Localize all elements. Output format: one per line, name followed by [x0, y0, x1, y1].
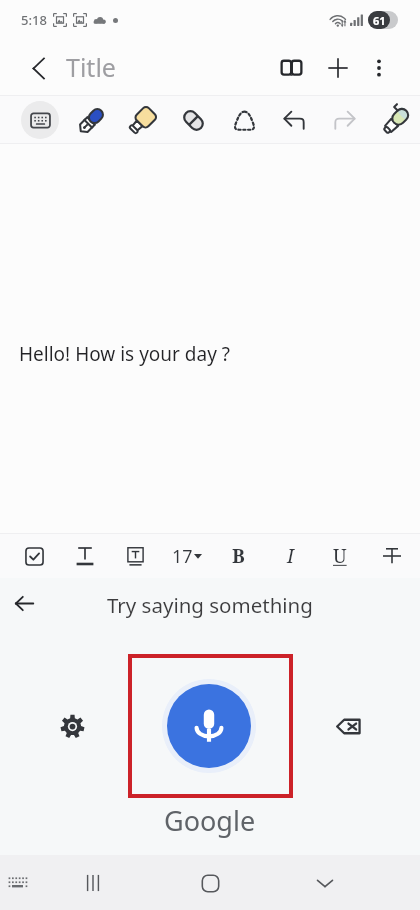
- button[interactable]: Home: [186, 859, 234, 907]
- button[interactable]: Add: [316, 46, 360, 90]
- staticText: U: [333, 543, 347, 569]
- button[interactable]: Undo: [272, 98, 316, 142]
- button[interactable]: Settings: [50, 704, 94, 748]
- button[interactable]: Highlighter: [120, 98, 164, 142]
- button[interactable]: I: [269, 535, 311, 577]
- button[interactable]: Backspace: [326, 704, 370, 748]
- button[interactable]: Marker: [374, 98, 418, 142]
- button[interactable]: Redo: [323, 98, 367, 142]
- button[interactable]: Recent apps: [69, 859, 117, 907]
- button[interactable]: Lasso select: [222, 98, 266, 142]
- button[interactable]: More options: [359, 48, 399, 88]
- staticText: Title: [66, 50, 116, 84]
- staticText: Try saying something: [107, 591, 313, 619]
- button[interactable]: Microphone: [167, 684, 251, 768]
- staticText: I: [287, 543, 294, 569]
- button[interactable]: Change keyboard: [0, 861, 40, 905]
- button[interactable]: B: [217, 535, 259, 577]
- staticText: 5:18: [21, 11, 47, 29]
- button[interactable]: Keyboard: [18, 98, 62, 142]
- button[interactable]: Strikethrough: [371, 535, 413, 577]
- button[interactable]: Hide keyboard: [301, 859, 349, 907]
- button[interactable]: Reading view: [269, 46, 313, 90]
- staticText: Hello! How is your day ?: [19, 341, 231, 367]
- button[interactable]: Text style: [64, 535, 106, 577]
- button[interactable]: Text box: [114, 535, 156, 577]
- button[interactable]: 17: [165, 536, 209, 576]
- staticText: Google: [164, 802, 256, 839]
- button[interactable]: Pen: [69, 98, 113, 142]
- staticText: 17: [172, 544, 193, 569]
- button[interactable]: Checklist: [13, 535, 55, 577]
- staticText: 61: [373, 13, 386, 28]
- button[interactable]: Back: [14, 44, 62, 92]
- button[interactable]: Eraser: [171, 98, 215, 142]
- staticText: B: [232, 543, 245, 569]
- button[interactable]: Back: [2, 581, 46, 625]
- button[interactable]: U: [319, 535, 361, 577]
